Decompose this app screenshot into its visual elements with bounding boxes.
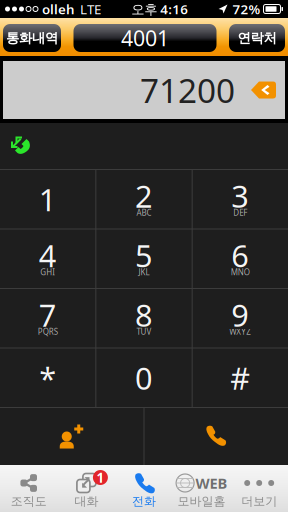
staticText: 더보기	[241, 494, 277, 509]
staticText: *	[39, 357, 56, 398]
staticText: 4001	[121, 24, 169, 52]
button[interactable]: Add contact	[0, 408, 143, 465]
staticText: 9	[231, 295, 249, 335]
staticText: DEF	[233, 207, 247, 218]
button[interactable]: 9	[193, 289, 288, 347]
staticText: WXYZ	[229, 326, 251, 337]
staticText: olleh	[42, 0, 75, 18]
button[interactable]: 6	[193, 229, 288, 288]
staticText: 72%	[232, 0, 260, 18]
staticText: TUV	[136, 326, 151, 337]
staticText: 2	[135, 176, 153, 216]
button[interactable]: *	[0, 348, 95, 407]
staticText: 오후 4:16	[131, 0, 188, 18]
button[interactable]: 2	[96, 170, 192, 228]
button[interactable]: 4	[0, 229, 95, 288]
staticText: 대화	[74, 494, 98, 509]
staticText: 71200	[140, 68, 235, 112]
staticText: WEB	[196, 473, 228, 493]
button[interactable]: 전화	[115, 465, 173, 512]
button[interactable]: 1	[0, 170, 95, 228]
staticText: 6	[231, 235, 249, 276]
staticText: LTE	[80, 0, 101, 18]
button[interactable]: 7	[0, 289, 95, 347]
button[interactable]: Recent calls	[0, 123, 288, 169]
button[interactable]: 더보기	[230, 465, 288, 512]
staticText: PQRS	[38, 326, 58, 337]
staticText: 연락처	[237, 30, 276, 46]
staticText: 3	[231, 176, 249, 216]
button[interactable]: 1	[58, 465, 115, 512]
button[interactable]: 통화내역	[3, 24, 61, 52]
staticText: GHI	[40, 267, 55, 277]
button[interactable]: Call	[144, 408, 288, 465]
button[interactable]: 3	[193, 170, 288, 228]
button[interactable]: 0	[96, 348, 192, 407]
staticText: 0	[135, 357, 153, 398]
staticText: 조직도	[11, 494, 47, 509]
staticText: JKL	[138, 267, 149, 277]
staticText: #	[230, 357, 250, 398]
staticText: 1	[39, 179, 57, 220]
button[interactable]: 4001	[73, 24, 216, 52]
button[interactable]: Delete	[251, 81, 276, 99]
button[interactable]: 연락처	[229, 24, 285, 52]
button[interactable]: 5	[96, 229, 192, 288]
staticText: 8	[135, 295, 153, 335]
button[interactable]: 조직도	[0, 465, 58, 512]
staticText: ABC	[136, 207, 151, 218]
staticText: 모바일홈	[178, 494, 226, 509]
staticText: 통화내역	[6, 30, 58, 46]
staticText: 4	[39, 235, 57, 276]
staticText: 1	[96, 469, 104, 486]
button[interactable]: #	[193, 348, 288, 407]
staticText: MNO	[231, 267, 250, 277]
button[interactable]: 8	[96, 289, 192, 347]
button[interactable]: WEB	[173, 465, 230, 512]
staticText: 전화	[132, 494, 156, 509]
staticText: 7	[39, 295, 57, 335]
staticText: 5	[135, 235, 153, 276]
